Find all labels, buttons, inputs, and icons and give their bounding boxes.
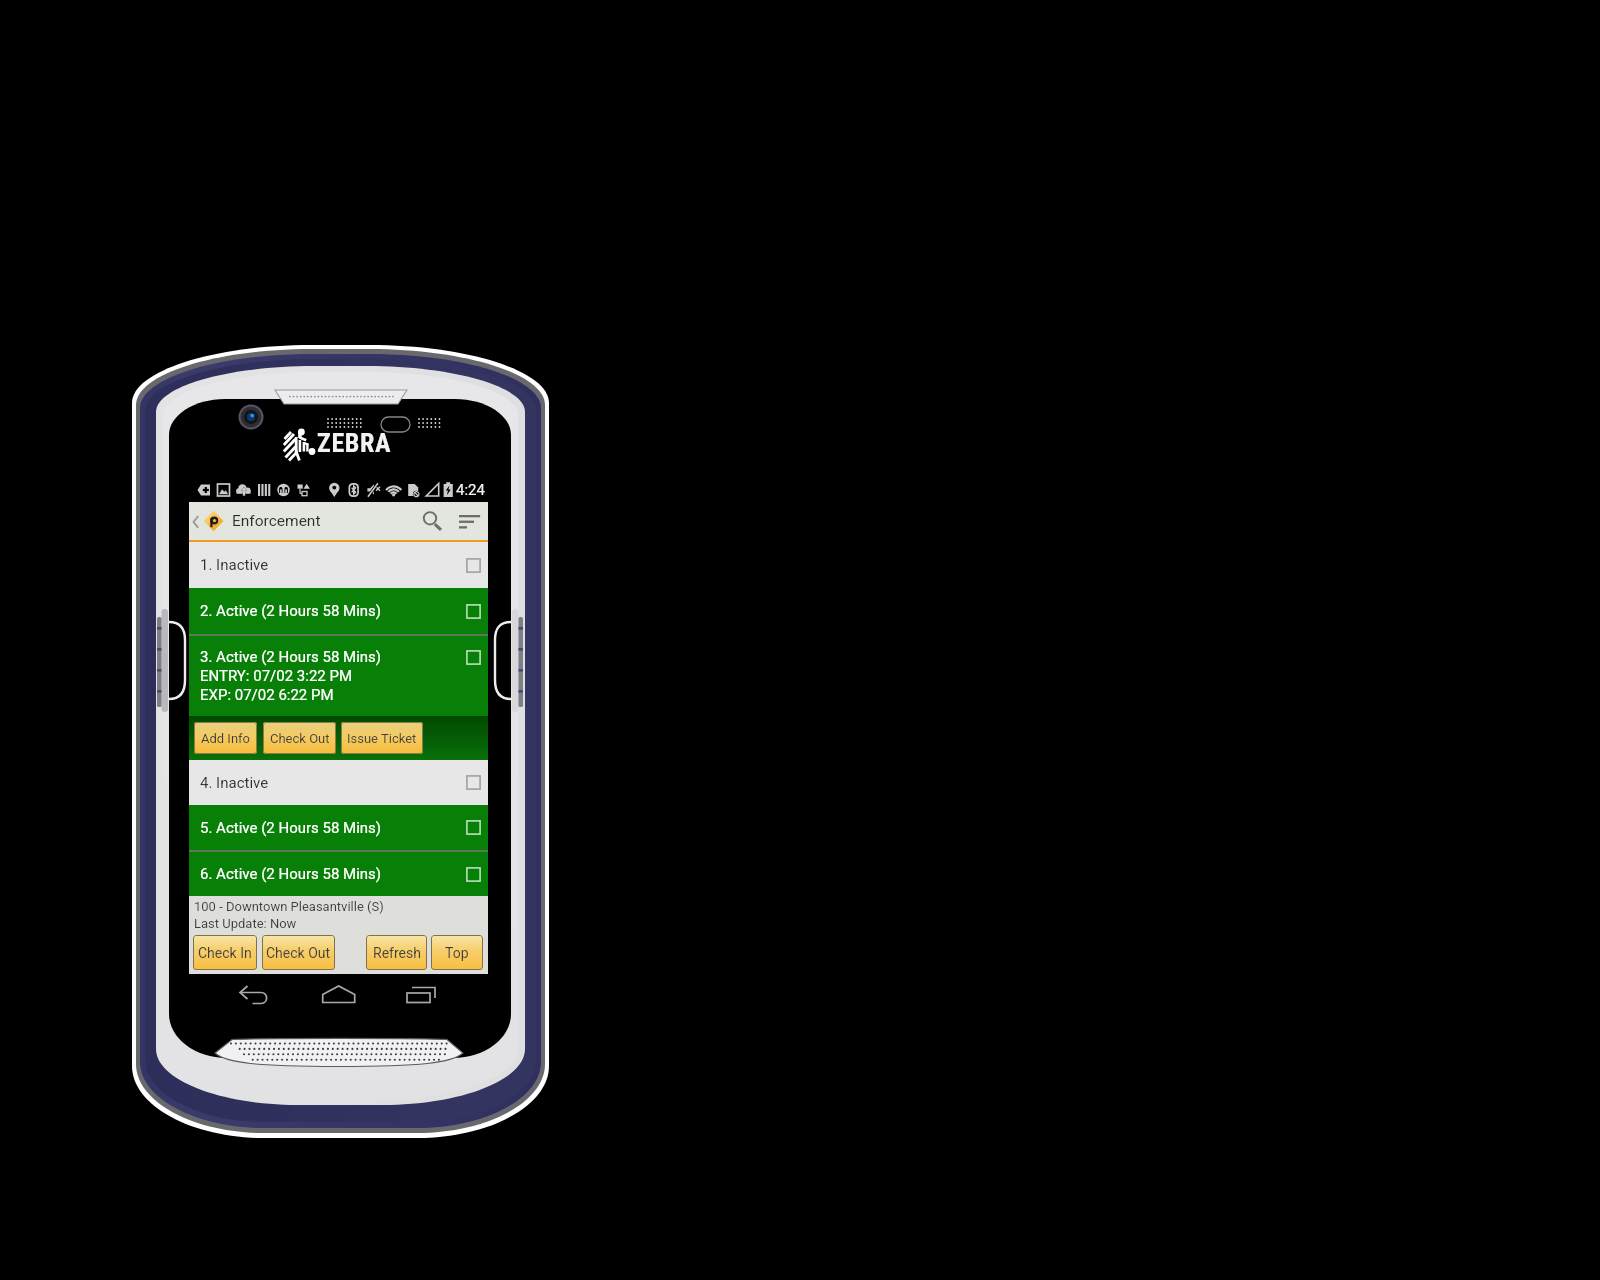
button[interactable]: 2. Active (2 Hours 58 Mins) bbox=[189, 588, 488, 634]
staticText: Last Update: Now bbox=[194, 916, 297, 931]
button[interactable]: Refresh bbox=[366, 935, 427, 970]
staticText: 4:24 bbox=[456, 481, 485, 499]
button[interactable]: Sort bbox=[453, 503, 487, 540]
button[interactable]: Home bbox=[316, 978, 360, 1012]
staticText: 3. Active (2 Hours 58 Mins) bbox=[200, 648, 382, 666]
button[interactable]: 3. Active (2 Hours 58 Mins) bbox=[189, 636, 488, 716]
staticText: 5. Active (2 Hours 58 Mins) bbox=[200, 819, 382, 837]
staticText: Check In bbox=[198, 945, 252, 961]
staticText: Top bbox=[445, 945, 469, 961]
staticText: Enforcement bbox=[232, 512, 321, 530]
staticText: 2. Active (2 Hours 58 Mins) bbox=[200, 602, 382, 620]
staticText: 4. Inactive bbox=[200, 774, 269, 792]
staticText: EXP: 07/02 6:22 PM bbox=[200, 686, 334, 704]
staticText: ENTRY: 07/02 3:22 PM bbox=[200, 667, 353, 685]
button[interactable]: Search bbox=[413, 503, 453, 540]
button[interactable]: Check In bbox=[193, 935, 257, 970]
button[interactable]: Check Out bbox=[263, 722, 336, 754]
button[interactable]: Back bbox=[232, 978, 276, 1012]
button[interactable]: Top bbox=[431, 935, 483, 970]
staticText: Refresh bbox=[373, 945, 421, 961]
button[interactable]: 4. Inactive bbox=[189, 760, 488, 805]
staticText: Check Out bbox=[266, 945, 331, 961]
button[interactable]: Recent apps bbox=[399, 978, 443, 1012]
staticText: ZEBRA bbox=[317, 428, 392, 458]
button[interactable]: Back bbox=[189, 503, 203, 540]
button[interactable]: Issue Ticket bbox=[341, 722, 423, 754]
button[interactable]: 6. Active (2 Hours 58 Mins) bbox=[189, 852, 488, 896]
staticText: Add Info bbox=[201, 731, 251, 746]
button[interactable]: 5. Active (2 Hours 58 Mins) bbox=[189, 805, 488, 850]
button[interactable]: 1. Inactive bbox=[189, 542, 488, 588]
staticText: Issue Ticket bbox=[347, 731, 417, 746]
button[interactable]: Check Out bbox=[262, 935, 335, 970]
staticText: 6. Active (2 Hours 58 Mins) bbox=[200, 865, 382, 883]
staticText: 1. Inactive bbox=[200, 556, 269, 574]
button[interactable]: Add Info bbox=[194, 722, 257, 754]
staticText: 100 - Downtown Pleasantville (S) bbox=[194, 899, 384, 914]
staticText: Check Out bbox=[270, 731, 330, 746]
